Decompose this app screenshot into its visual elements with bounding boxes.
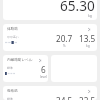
- other: 内臓脂肪レベル: [38, 58, 43, 63]
- staticText: 骨格筋: [7, 89, 18, 94]
- button[interactable]: 体脂肪: [3, 24, 97, 51]
- staticText: 20.7: [56, 33, 73, 44]
- staticText: level: [40, 75, 47, 79]
- staticText: やや高い: [7, 35, 19, 39]
- staticText: 体脂肪: [7, 27, 18, 32]
- other: 体脂肪: [87, 27, 92, 32]
- staticText: 34.5: [56, 95, 73, 100]
- staticText: %: [63, 44, 66, 48]
- staticText: 標準: [7, 66, 13, 70]
- staticText: kg: [88, 13, 92, 18]
- button[interactable]: 骨格筋: [3, 86, 97, 100]
- staticText: kg: [86, 44, 90, 48]
- staticText: 22.5: [79, 95, 96, 100]
- staticText: 6: [41, 64, 46, 75]
- other: 骨格筋: [87, 89, 92, 94]
- staticText: 13.5: [79, 33, 96, 44]
- staticText: 内臓脂肪レベル: [7, 58, 33, 63]
- button[interactable]: 65.30: [3, 0, 97, 20]
- staticText: 標準: [7, 97, 13, 100]
- button[interactable]: 内臓脂肪レベル: [3, 55, 48, 82]
- staticText: 65.30: [60, 0, 95, 15]
